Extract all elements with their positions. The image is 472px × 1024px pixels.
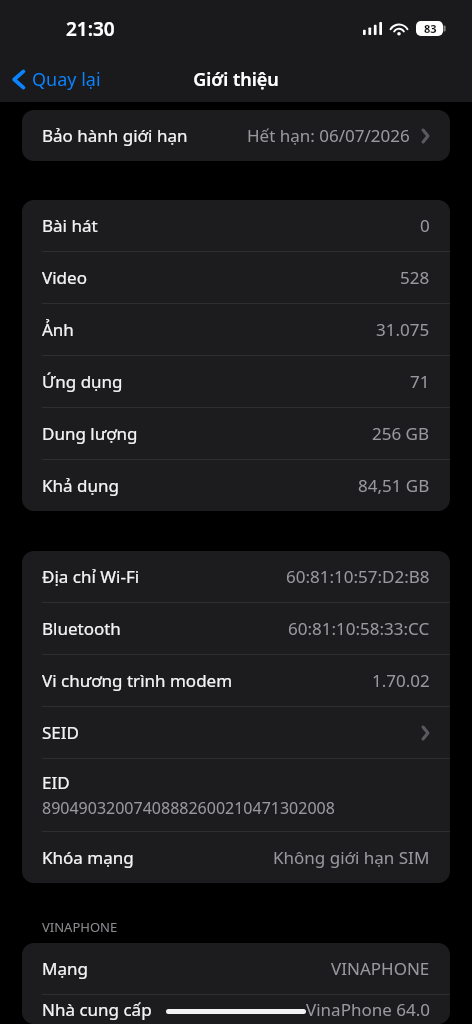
staticText: Giới thiệu [193,67,279,92]
button[interactable]: Nhà cung cấp [22,995,450,1024]
staticText: Video [42,266,87,289]
staticText: Hết hạn: 06/07/2026 [247,124,410,147]
staticText: 31.075 [376,318,430,341]
staticText: 89049032007408882600210471302008 [42,797,335,819]
button[interactable]: Bluetooth [22,603,450,654]
staticText: 60:81:10:57:D2:B8 [286,565,430,588]
staticText: Nhà cung cấp [42,998,152,1021]
staticText: Quay lại [32,67,101,92]
button[interactable]: Dung lượng [22,408,450,459]
staticText: VinaPhone 64.0 [306,998,430,1021]
staticText: Bluetooth [42,617,121,640]
button[interactable]: Video [22,252,450,303]
button[interactable]: Vi chương trình modem [22,655,450,706]
button[interactable]: SEID [22,707,450,758]
staticText: Bài hát [42,214,98,237]
staticText: Khóa mạng [42,846,134,869]
button[interactable]: Ứng dụng [22,356,450,407]
staticText: VINAPHONE [42,918,118,936]
button[interactable]: EID [22,759,450,831]
button[interactable]: Địa chỉ Wi-Fi [22,551,450,602]
staticText: Ảnh [42,318,74,341]
staticText: 1.70.02 [372,669,430,692]
staticText: Ứng dụng [42,370,123,393]
staticText: 0 [420,214,430,237]
staticText: Không giới hạn SIM [273,846,430,869]
staticText: Bảo hành giới hạn [42,124,188,147]
staticText: 21:30 [66,16,115,42]
staticText: 84,51 GB [358,474,430,497]
button[interactable]: Khả dụng [22,460,450,511]
staticText: 256 GB [372,422,430,445]
staticText: EID [42,771,70,794]
staticText: VINAPHONE [331,957,430,980]
staticText: Mạng [42,957,88,980]
button[interactable]: Quay lại [0,61,111,98]
staticText: Khả dụng [42,474,119,497]
staticText: Dung lượng [42,422,138,445]
staticText: Vi chương trình modem [42,669,233,692]
staticText: 71 [410,370,430,393]
button[interactable]: Bài hát [22,200,450,251]
staticText: 83 [424,21,437,36]
button[interactable]: Bảo hành giới hạn [22,110,450,161]
staticText: 60:81:10:58:33:CC [288,617,430,640]
button[interactable]: Mạng [22,943,450,994]
staticText: Địa chỉ Wi-Fi [42,565,140,588]
button[interactable]: Ảnh [22,304,450,355]
button[interactable]: Khóa mạng [22,832,450,883]
staticText: SEID [42,721,79,744]
staticText: 528 [400,266,430,289]
